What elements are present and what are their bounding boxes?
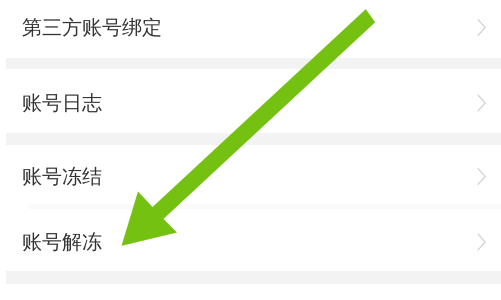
staticText: 账号解冻 — [22, 230, 102, 254]
button[interactable]: 第三方账号绑定 — [0, 0, 501, 58]
staticText: 账号冻结 — [22, 164, 102, 189]
button[interactable]: 账号日志 — [0, 69, 501, 133]
button[interactable]: 账号冻结 — [0, 145, 501, 204]
staticText: 第三方账号绑定 — [22, 15, 162, 40]
button[interactable]: 账号解冻 — [0, 209, 501, 271]
staticText: 账号日志 — [22, 91, 102, 115]
